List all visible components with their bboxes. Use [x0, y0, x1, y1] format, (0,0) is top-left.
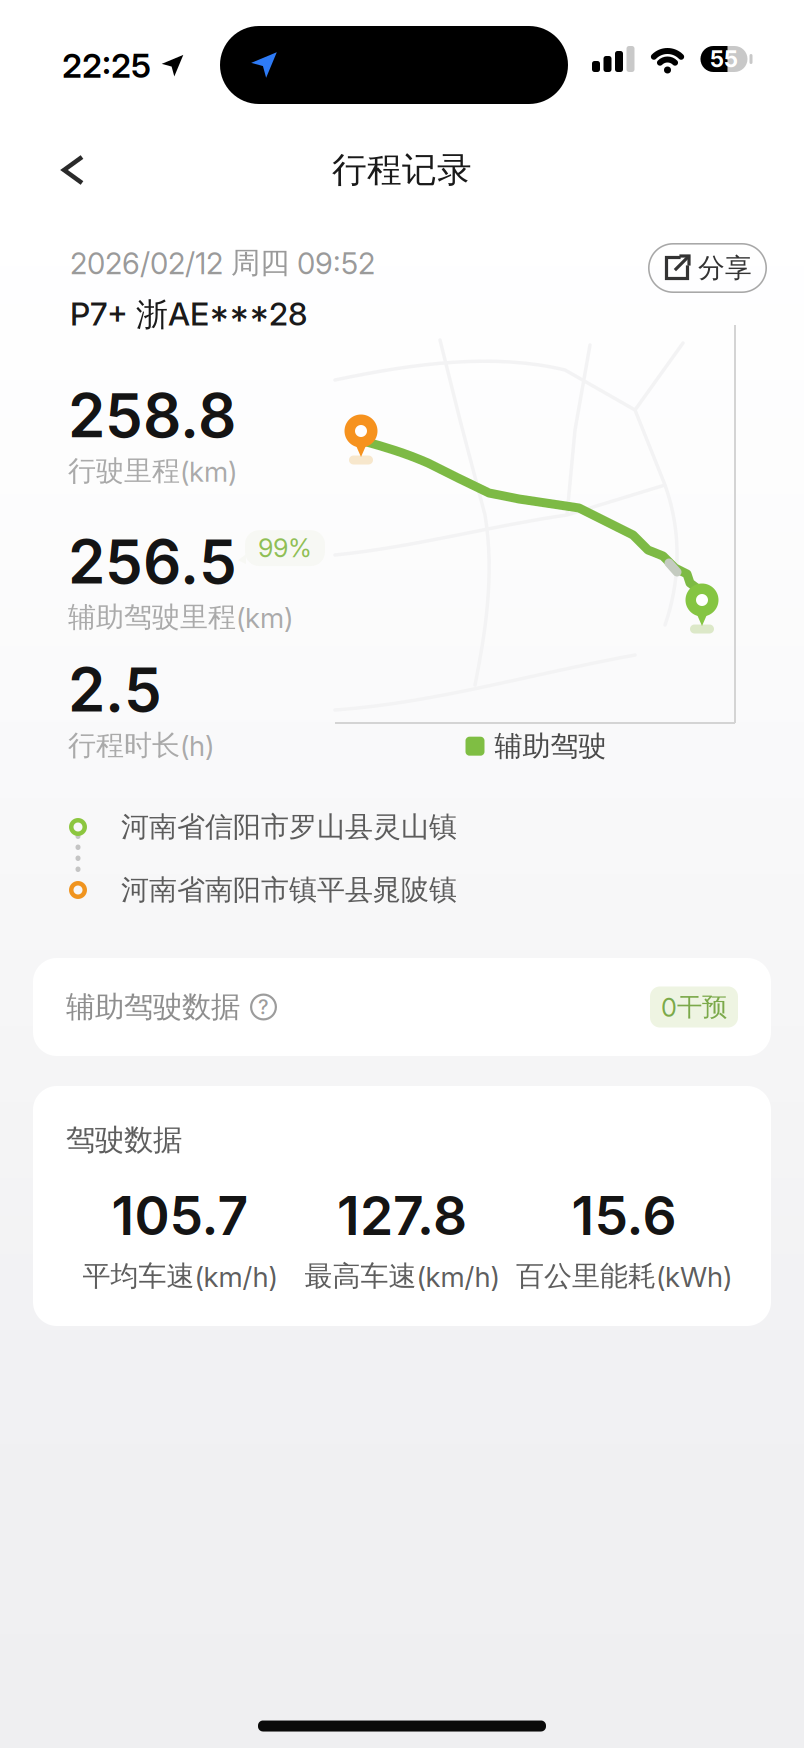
- staticText: 0干预: [661, 991, 727, 1022]
- staticText: 行程时长(h): [68, 728, 214, 762]
- staticText: ?: [258, 995, 269, 1019]
- staticText: 105.7: [111, 1184, 248, 1247]
- staticText: 99%: [258, 533, 312, 563]
- staticText: P7+ 浙AE***28: [70, 295, 307, 334]
- button[interactable]: Back: [10, 133, 116, 207]
- staticText: 百公里能耗(kWh): [516, 1259, 732, 1293]
- button[interactable]: Help: [240, 993, 277, 1020]
- staticText: 辅助驾驶里程(km): [68, 600, 293, 634]
- staticText: 256.5: [68, 526, 237, 597]
- staticText: 河南省信阳市罗山县灵山镇: [121, 810, 457, 844]
- staticText: 15.6: [571, 1184, 676, 1247]
- staticText: 辅助驾驶数据: [66, 989, 240, 1025]
- staticText: 河南省南阳市镇平县晁陂镇: [121, 873, 457, 907]
- staticText: 55: [710, 46, 738, 72]
- staticText: 辅助驾驶: [494, 729, 606, 763]
- staticText: 258.8: [68, 380, 236, 451]
- staticText: 2026/02/12 周四 09:52: [70, 245, 375, 281]
- staticText: 127.8: [337, 1184, 467, 1247]
- staticText: 行驶里程(km): [68, 454, 237, 488]
- staticText: 驾驶数据: [66, 1122, 182, 1158]
- staticText: 2.5: [68, 654, 162, 725]
- staticText: 平均车速(km/h): [82, 1259, 277, 1293]
- staticText: 最高车速(km/h): [304, 1259, 499, 1293]
- staticText: 22:25: [62, 46, 151, 85]
- staticText: 行程记录: [332, 149, 472, 191]
- button[interactable]: 分享: [648, 243, 767, 293]
- staticText: 分享: [698, 252, 752, 284]
